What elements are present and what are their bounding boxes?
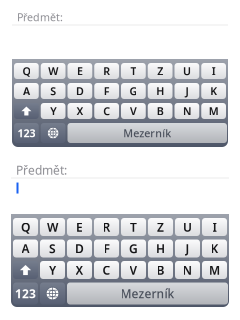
button[interactable]: F xyxy=(94,83,119,99)
staticText: K xyxy=(210,240,218,256)
button[interactable]: C xyxy=(94,261,119,279)
staticText: Z xyxy=(157,219,164,235)
button[interactable]: K xyxy=(202,239,227,257)
staticText: C xyxy=(102,262,110,278)
staticText: W xyxy=(47,219,58,235)
staticText: Předmět: xyxy=(16,162,67,178)
staticText: K xyxy=(210,84,217,98)
button[interactable]: B xyxy=(148,103,173,119)
button[interactable]: Y xyxy=(41,103,66,119)
staticText: Q xyxy=(21,219,30,235)
button[interactable]: J xyxy=(174,83,199,99)
button[interactable]: K xyxy=(201,83,226,99)
button[interactable]: Z xyxy=(148,218,173,236)
button[interactable]: I xyxy=(202,218,227,236)
staticText: M xyxy=(209,104,219,118)
staticText: U xyxy=(183,219,192,235)
staticText: Y xyxy=(49,262,56,278)
button[interactable]: S xyxy=(41,83,66,99)
staticText: D xyxy=(75,240,84,256)
staticText: V xyxy=(129,262,137,278)
button[interactable]: R xyxy=(94,63,119,79)
button[interactable]: D xyxy=(67,83,92,99)
button[interactable]: 123 xyxy=(13,282,38,304)
staticText: N xyxy=(183,104,191,118)
staticText: R xyxy=(103,64,110,78)
staticText: U xyxy=(183,64,191,78)
staticText: X xyxy=(75,262,83,278)
staticText: E xyxy=(77,64,83,78)
button[interactable]: M xyxy=(201,103,226,119)
button[interactable]: U xyxy=(174,63,199,79)
button[interactable]: M xyxy=(202,261,227,279)
button[interactable]: N xyxy=(174,103,199,119)
staticText: Z xyxy=(157,64,163,78)
staticText: B xyxy=(156,262,164,278)
button[interactable]: X xyxy=(67,261,92,279)
button[interactable]: Shift xyxy=(13,261,38,279)
staticText: B xyxy=(157,104,164,118)
staticText: 123 xyxy=(15,285,36,301)
staticText: M xyxy=(209,262,220,278)
staticText: T xyxy=(130,64,136,78)
staticText: N xyxy=(182,262,192,278)
button[interactable]: A xyxy=(13,239,38,257)
staticText: R xyxy=(102,219,110,235)
staticText: X xyxy=(76,104,83,118)
staticText: V xyxy=(130,104,137,118)
button[interactable]: Switch keyboard xyxy=(41,123,66,143)
button[interactable]: H xyxy=(148,239,173,257)
staticText: G xyxy=(129,240,138,256)
button[interactable]: H xyxy=(148,83,173,99)
button[interactable]: W xyxy=(40,218,65,236)
button[interactable]: Z xyxy=(148,63,173,79)
button[interactable]: E xyxy=(67,218,92,236)
button[interactable]: B xyxy=(148,261,173,279)
button[interactable]: 123 xyxy=(14,123,39,143)
button[interactable]: Q xyxy=(14,63,39,79)
button[interactable]: G xyxy=(121,83,146,99)
button[interactable]: E xyxy=(67,63,92,79)
button[interactable]: A xyxy=(14,83,39,99)
staticText: 123 xyxy=(17,126,35,140)
staticText: T xyxy=(130,219,137,235)
staticText: H xyxy=(156,84,164,98)
staticText: S xyxy=(49,240,56,256)
button[interactable]: R xyxy=(94,218,119,236)
button[interactable]: S xyxy=(40,239,65,257)
button[interactable]: Q xyxy=(13,218,38,236)
button[interactable]: W xyxy=(41,63,66,79)
button[interactable]: Shift xyxy=(14,103,39,119)
staticText: H xyxy=(156,240,165,256)
staticText: F xyxy=(104,84,110,98)
button[interactable]: I xyxy=(201,63,226,79)
staticText: A xyxy=(23,84,30,98)
button[interactable]: D xyxy=(67,239,92,257)
staticText: J xyxy=(185,84,188,98)
button[interactable]: F xyxy=(94,239,119,257)
button[interactable]: U xyxy=(175,218,200,236)
button[interactable]: Mezerník xyxy=(67,282,228,304)
button[interactable]: Switch keyboard xyxy=(40,282,65,304)
button[interactable]: V xyxy=(121,103,146,119)
staticText: A xyxy=(21,240,29,256)
button[interactable]: T xyxy=(121,218,146,236)
staticText: E xyxy=(76,219,83,235)
button[interactable]: X xyxy=(67,103,92,119)
staticText: Y xyxy=(50,104,56,118)
button[interactable]: V xyxy=(121,261,146,279)
button[interactable]: T xyxy=(121,63,146,79)
button[interactable]: Mezerník xyxy=(67,123,227,143)
staticText: G xyxy=(129,84,137,98)
button[interactable]: C xyxy=(94,103,119,119)
staticText: S xyxy=(50,84,56,98)
staticText: D xyxy=(76,84,84,98)
button[interactable]: J xyxy=(175,239,200,257)
button[interactable]: G xyxy=(121,239,146,257)
staticText: Q xyxy=(22,64,30,78)
button[interactable]: Y xyxy=(40,261,65,279)
staticText: W xyxy=(48,64,58,78)
staticText: Mezerník xyxy=(120,285,174,301)
staticText: Předmět: xyxy=(17,10,63,24)
button[interactable]: N xyxy=(175,261,200,279)
